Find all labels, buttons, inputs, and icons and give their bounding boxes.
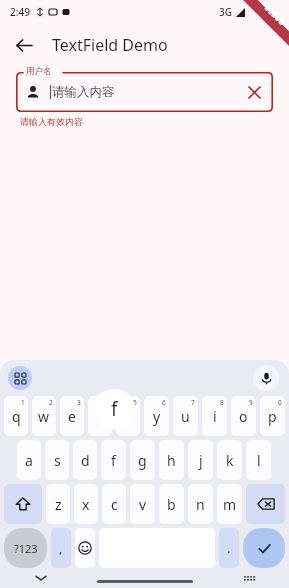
staticText: 6 [162,398,166,407]
button[interactable]: Keyboard toolbar [8,366,32,390]
button[interactable]: Shift [4,484,42,524]
button[interactable]: e [60,396,84,436]
button[interactable]: v [130,484,155,524]
staticText: 9 [249,398,253,407]
staticText: j [199,451,203,470]
button[interactable]: Voice input [253,365,279,391]
button[interactable]: m [217,484,242,524]
button[interactable]: h [159,440,184,480]
staticText: ?123 [14,541,38,556]
staticText: s [54,451,61,470]
staticText: f [111,396,118,422]
button[interactable]: , [51,528,71,568]
staticText: p [268,407,277,426]
staticText: u [181,407,190,426]
staticText: TextField Demo [52,34,168,56]
button[interactable] [88,396,112,436]
button[interactable]: s [45,440,69,480]
staticText: f [111,451,116,470]
button[interactable]: a [17,440,41,480]
staticText: y [153,407,161,426]
button[interactable]: Backspace [246,484,285,524]
staticText: 8 [220,398,224,407]
button[interactable]: b [159,484,184,524]
button[interactable]: x [74,484,98,524]
staticText: 5 [133,398,137,407]
button[interactable]: o [231,396,256,436]
staticText: w [38,407,50,426]
button[interactable]: y [144,396,169,436]
button[interactable]: z [46,484,70,524]
button[interactable]: q [4,396,28,436]
staticText: k [226,451,234,470]
button[interactable]: i [202,396,227,436]
staticText: g [138,451,147,470]
button[interactable]: k [217,440,242,480]
staticText: n [196,495,205,514]
staticText: 1 [21,398,25,407]
button[interactable]: u [173,396,198,436]
button[interactable]: . [219,528,239,568]
button[interactable]: Emoji [75,528,95,568]
staticText: 2 [49,398,53,407]
staticText: l [257,451,261,470]
staticText: 2:49 [10,5,30,19]
staticText: h [167,451,176,470]
staticText: DEBUG [262,4,287,28]
button[interactable]: Switch keyboard [239,568,261,588]
staticText: v [139,495,147,514]
button[interactable]: ?123 [4,528,47,568]
staticText: 0 [278,398,282,407]
staticText: e [68,407,76,426]
staticText: 请输入内容 [52,84,115,100]
button[interactable]: d [73,440,97,480]
button[interactable]: l [246,440,271,480]
button[interactable]: Clear text [241,79,267,105]
button[interactable]: j [188,440,213,480]
staticText: b [167,495,176,514]
staticText: a [25,451,33,470]
staticText: 用户名 [26,66,52,77]
button[interactable]: c [102,484,126,524]
button[interactable]: g [130,440,155,480]
button[interactable]: w [32,396,56,436]
staticText: , [59,539,63,557]
button[interactable]: Back [6,27,42,63]
button[interactable]: t [116,396,140,436]
staticText: d [81,451,90,470]
button[interactable]: Hide keyboard [30,568,52,588]
staticText: 请输入有效内容 [20,116,83,127]
button[interactable]: p [260,396,285,436]
staticText: 3G [219,5,232,19]
staticText: z [55,495,62,514]
staticText: m [223,495,237,514]
staticText: 7 [191,398,195,407]
staticText: . [227,539,231,557]
staticText: x [82,495,90,514]
staticText: i [213,407,217,426]
staticText: 3 [77,398,81,407]
button[interactable]: Enter [243,528,285,568]
staticText: q [12,407,21,426]
button[interactable]: n [188,484,213,524]
staticText: c [111,495,118,514]
staticText: o [239,407,248,426]
button[interactable]: f [101,440,126,480]
